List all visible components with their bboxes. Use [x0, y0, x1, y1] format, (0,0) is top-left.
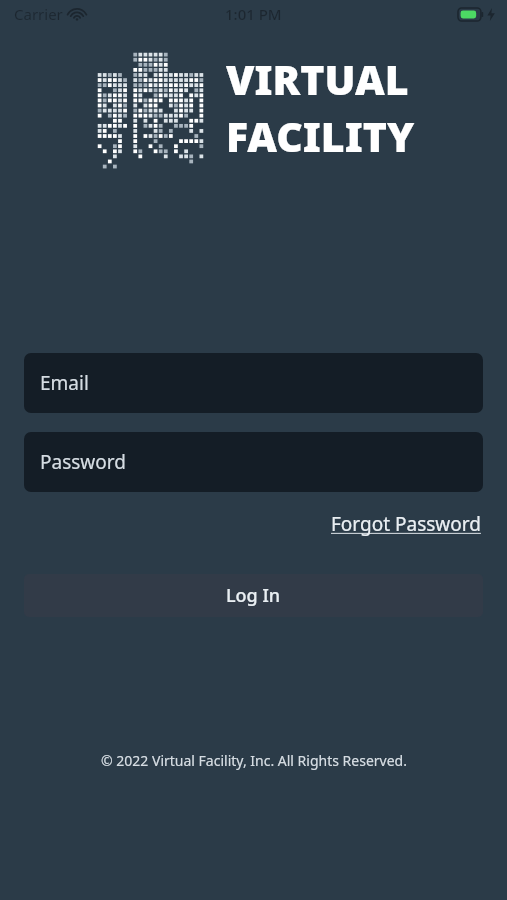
button[interactable]: Log In [24, 574, 483, 617]
button[interactable]: Email [24, 353, 483, 413]
staticText: Email [40, 370, 89, 396]
staticText: FACILITY [226, 108, 415, 164]
staticText: Carrier [14, 4, 63, 24]
staticText: VIRTUAL [226, 51, 409, 107]
staticText: © 2022 Virtual Facility, Inc. All Rights… [101, 751, 407, 770]
staticText: Forgot Password [331, 511, 481, 537]
staticText: Log In [226, 583, 281, 608]
staticText: 1:01 PM [225, 4, 282, 24]
button[interactable]: Forgot Password [329, 506, 483, 542]
staticText: Password [40, 449, 126, 475]
button[interactable]: Password [24, 432, 483, 492]
